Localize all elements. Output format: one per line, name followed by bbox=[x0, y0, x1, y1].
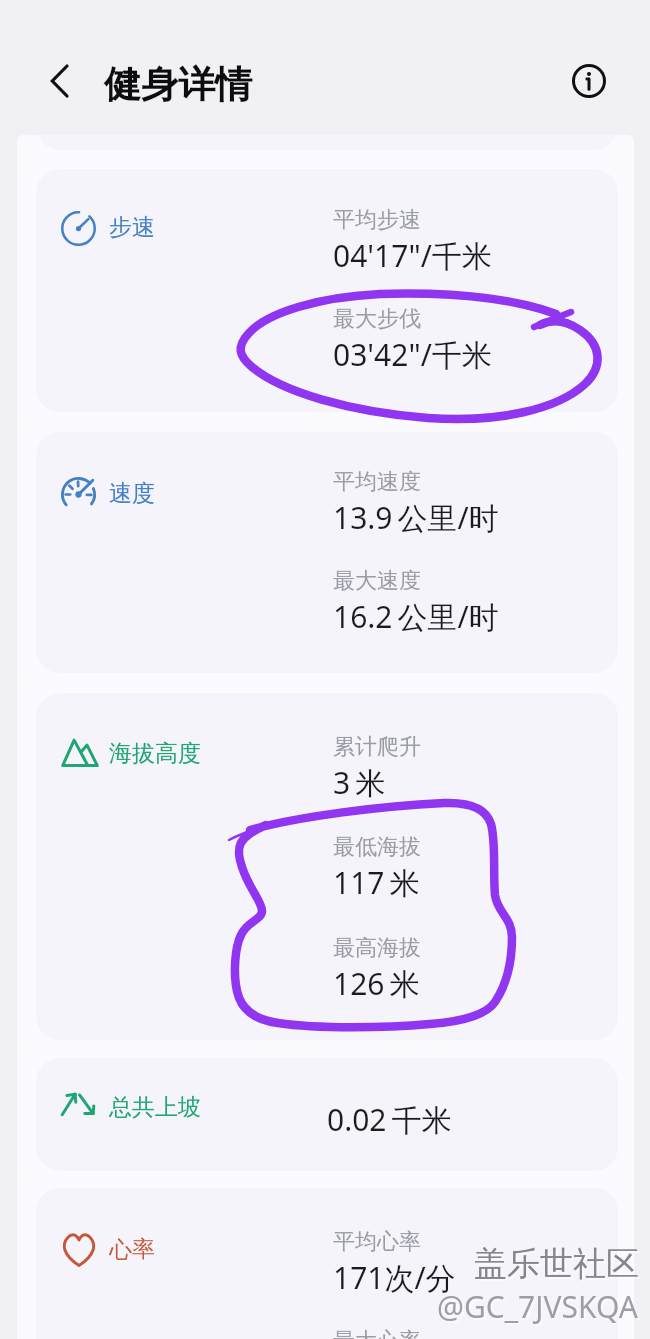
staticText: 04'17"/千米 bbox=[333, 235, 492, 276]
button[interactable]: Back bbox=[36, 57, 84, 105]
staticText: 盖乐世社区 bbox=[476, 1245, 641, 1287]
staticText: 速度 bbox=[109, 479, 155, 508]
staticText: 累计爬升 bbox=[333, 733, 421, 761]
staticText: 最低海拔 bbox=[333, 833, 421, 861]
staticText: 心率 bbox=[109, 1235, 155, 1264]
staticText: 最大步伐 bbox=[333, 305, 421, 333]
staticText: 盖乐世社区 bbox=[474, 1243, 639, 1285]
staticText: 最大心率 bbox=[333, 1327, 421, 1339]
staticText: 总共上坡 bbox=[109, 1093, 201, 1122]
button[interactable] bbox=[36, 432, 618, 673]
staticText: 03'42"/千米 bbox=[333, 334, 492, 375]
staticText: 健身详情 bbox=[104, 61, 252, 108]
staticText: 0.02 千米 bbox=[327, 1099, 452, 1140]
staticText: 13.9 公里/时 bbox=[333, 497, 499, 538]
button[interactable] bbox=[36, 1058, 618, 1171]
staticText: @GC_7JVSKQA bbox=[439, 1288, 640, 1329]
staticText: 最高海拔 bbox=[333, 934, 421, 962]
button[interactable] bbox=[36, 1188, 618, 1339]
staticText: 171次/分 bbox=[333, 1257, 456, 1298]
staticText: 126 米 bbox=[333, 963, 420, 1004]
staticText: 步速 bbox=[109, 213, 155, 242]
staticText: @GC_7JVSKQA bbox=[437, 1286, 638, 1327]
staticText: 海拔高度 bbox=[109, 739, 201, 768]
staticText: 平均速度 bbox=[333, 468, 421, 496]
staticText: 3 米 bbox=[333, 762, 386, 803]
staticText: 16.2 公里/时 bbox=[333, 596, 499, 637]
button[interactable] bbox=[36, 169, 618, 412]
staticText: 平均步速 bbox=[333, 206, 421, 234]
staticText: 平均心率 bbox=[333, 1228, 421, 1256]
button[interactable] bbox=[36, 693, 618, 1040]
button[interactable]: Info bbox=[566, 58, 612, 104]
staticText: 117 米 bbox=[333, 862, 420, 903]
staticText: 最大速度 bbox=[333, 567, 421, 595]
